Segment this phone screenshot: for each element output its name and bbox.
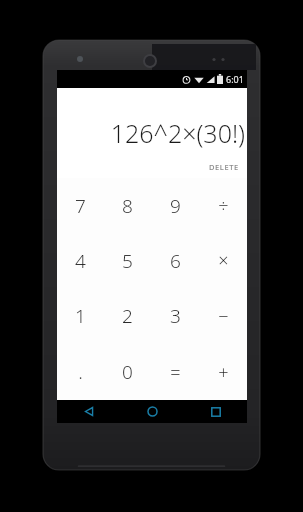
staticText: 4 bbox=[75, 248, 86, 274]
button[interactable]: 7 bbox=[57, 178, 104, 233]
staticText: = bbox=[170, 360, 181, 385]
staticText: 0 bbox=[122, 359, 133, 385]
staticText: 5 bbox=[122, 248, 133, 274]
staticText: 2 bbox=[122, 303, 133, 329]
staticText: 6:01 bbox=[226, 73, 244, 85]
button[interactable]: 2 bbox=[104, 288, 151, 344]
staticText: 8 bbox=[122, 193, 133, 219]
staticText: 7 bbox=[75, 193, 86, 219]
staticText: DELETE bbox=[209, 162, 239, 172]
button[interactable]: Home bbox=[121, 400, 184, 423]
staticText: 1 bbox=[75, 303, 86, 329]
staticText: 3 bbox=[170, 303, 181, 329]
staticText: − bbox=[218, 304, 229, 329]
button[interactable]: = bbox=[151, 344, 199, 400]
button[interactable]: + bbox=[199, 344, 247, 400]
button[interactable]: Back bbox=[57, 400, 121, 423]
button[interactable]: 3 bbox=[151, 288, 199, 344]
button[interactable]: 5 bbox=[104, 233, 151, 288]
button[interactable]: 4 bbox=[57, 233, 104, 288]
button[interactable]: − bbox=[199, 288, 247, 344]
button[interactable]: 8 bbox=[104, 178, 151, 233]
button[interactable]: Recent apps bbox=[184, 400, 247, 423]
staticText: 6 bbox=[170, 248, 181, 274]
button[interactable]: 1 bbox=[57, 288, 104, 344]
button[interactable]: 6 bbox=[151, 233, 199, 288]
button[interactable]: × bbox=[199, 233, 247, 288]
staticText: × bbox=[218, 248, 229, 273]
staticText: ÷ bbox=[218, 193, 229, 218]
button[interactable]: 0 bbox=[104, 344, 151, 400]
staticText: 126^2×(30!) bbox=[110, 116, 245, 150]
button[interactable]: . bbox=[57, 344, 104, 400]
staticText: + bbox=[218, 360, 229, 385]
staticText: 9 bbox=[170, 193, 181, 219]
button[interactable]: 9 bbox=[151, 178, 199, 233]
button[interactable]: 126^2×(30!) bbox=[57, 88, 247, 156]
staticText: . bbox=[78, 359, 83, 385]
button[interactable]: DELETE bbox=[201, 159, 247, 175]
button[interactable]: ÷ bbox=[199, 178, 247, 233]
